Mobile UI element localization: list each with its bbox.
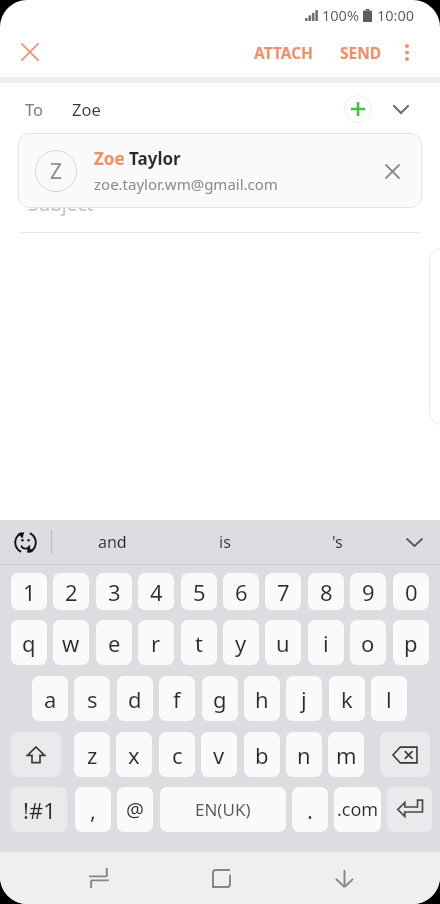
button[interactable]: is bbox=[168, 520, 281, 564]
button[interactable]: Stickers bbox=[7, 524, 43, 560]
staticText: x bbox=[128, 740, 140, 770]
staticText: a bbox=[44, 684, 57, 714]
button[interactable]: 6 bbox=[223, 573, 259, 610]
button[interactable]: @ bbox=[117, 787, 153, 832]
button[interactable]: Z bbox=[18, 133, 422, 208]
button[interactable]: g bbox=[202, 676, 238, 721]
button[interactable]: 4 bbox=[138, 573, 174, 610]
button[interactable]: f bbox=[159, 676, 195, 721]
staticText: c bbox=[172, 740, 183, 770]
button[interactable]: l bbox=[371, 676, 407, 721]
button[interactable]: w bbox=[53, 620, 89, 665]
staticText: 9 bbox=[362, 577, 375, 607]
button[interactable]: b bbox=[244, 732, 280, 777]
button[interactable]: and bbox=[56, 520, 168, 564]
button[interactable]: .com bbox=[334, 787, 381, 832]
staticText: g bbox=[213, 684, 227, 714]
button[interactable]: x bbox=[116, 732, 152, 777]
staticText: v bbox=[213, 740, 225, 770]
button[interactable]: e bbox=[96, 620, 132, 665]
button[interactable]: 7 bbox=[265, 573, 301, 610]
staticText: 4 bbox=[150, 577, 163, 607]
button[interactable]: v bbox=[201, 732, 237, 777]
button[interactable]: d bbox=[117, 676, 153, 721]
staticText: 1 bbox=[23, 577, 36, 607]
staticText: .com bbox=[337, 797, 379, 822]
button[interactable]: Remove recipient bbox=[378, 157, 406, 185]
staticText: , bbox=[90, 795, 96, 825]
button[interactable]: 5 bbox=[181, 573, 217, 610]
button[interactable]: More options bbox=[388, 30, 426, 74]
staticText: m bbox=[336, 740, 357, 770]
button[interactable]: 0 bbox=[393, 573, 429, 610]
staticText: b bbox=[255, 740, 269, 770]
staticText: SEND bbox=[340, 42, 382, 63]
staticText: d bbox=[128, 684, 142, 714]
staticText: . bbox=[307, 795, 313, 825]
button[interactable]: i bbox=[308, 620, 344, 665]
staticText: n bbox=[297, 740, 311, 770]
staticText: ATTACH bbox=[254, 42, 313, 63]
button[interactable]: m bbox=[328, 732, 364, 777]
button[interactable]: c bbox=[159, 732, 195, 777]
staticText: 8 bbox=[320, 577, 333, 607]
button[interactable]: r bbox=[138, 620, 174, 665]
staticText: z bbox=[87, 740, 98, 770]
button[interactable]: s bbox=[74, 676, 110, 721]
staticText: e bbox=[108, 628, 121, 658]
button[interactable]: 2 bbox=[53, 573, 89, 610]
button[interactable]: 's bbox=[281, 520, 394, 564]
staticText: EN(UK) bbox=[195, 798, 251, 821]
button[interactable]: o bbox=[350, 620, 386, 665]
button[interactable]: j bbox=[286, 676, 322, 721]
staticText: 7 bbox=[277, 577, 290, 607]
button[interactable]: Recents bbox=[74, 852, 122, 904]
staticText: s bbox=[87, 684, 98, 714]
button[interactable]: a bbox=[32, 676, 68, 721]
button[interactable]: 1 bbox=[11, 573, 47, 610]
button[interactable]: u bbox=[265, 620, 301, 665]
staticText: 5 bbox=[193, 577, 206, 607]
button[interactable]: Shift bbox=[11, 732, 61, 777]
staticText: Zoe Taylor bbox=[94, 147, 181, 170]
button[interactable]: p bbox=[393, 620, 429, 665]
button[interactable]: SEND bbox=[328, 30, 394, 74]
button[interactable]: q bbox=[11, 620, 47, 665]
button[interactable]: z bbox=[74, 732, 110, 777]
button[interactable]: !#1 bbox=[11, 787, 67, 832]
staticText: @ bbox=[126, 796, 144, 823]
staticText: 's bbox=[332, 531, 343, 553]
button[interactable]: Enter bbox=[387, 787, 432, 832]
button[interactable]: Add recipient bbox=[344, 95, 372, 123]
staticText: o bbox=[361, 628, 375, 658]
button[interactable]: k bbox=[329, 676, 365, 721]
button[interactable]: ATTACH bbox=[242, 30, 325, 74]
staticText: y bbox=[235, 628, 247, 658]
button[interactable]: Show more fields bbox=[385, 93, 417, 125]
button[interactable]: EN(UK) bbox=[160, 787, 286, 832]
staticText: 10:00 bbox=[377, 5, 415, 25]
staticText: To bbox=[25, 98, 44, 120]
button[interactable]: Backspace bbox=[380, 732, 430, 777]
staticText: Subject bbox=[28, 191, 94, 217]
button[interactable]: 3 bbox=[96, 573, 132, 610]
button[interactable]: y bbox=[223, 620, 259, 665]
button[interactable]: Home bbox=[197, 852, 245, 904]
staticText: is bbox=[219, 531, 231, 553]
staticText: !#1 bbox=[23, 795, 56, 825]
staticText: p bbox=[404, 628, 418, 658]
button[interactable]: t bbox=[181, 620, 217, 665]
button[interactable]: h bbox=[244, 676, 280, 721]
button[interactable]: n bbox=[286, 732, 322, 777]
staticText: j bbox=[301, 684, 307, 714]
button[interactable]: 8 bbox=[308, 573, 344, 610]
button[interactable]: . bbox=[292, 787, 328, 832]
button[interactable]: Close bbox=[12, 34, 48, 70]
button[interactable]: 9 bbox=[350, 573, 386, 610]
staticText: t bbox=[195, 628, 203, 658]
button[interactable]: , bbox=[75, 787, 111, 832]
staticText: w bbox=[62, 628, 80, 658]
staticText: u bbox=[276, 628, 290, 658]
button[interactable]: Hide keyboard bbox=[320, 852, 368, 904]
button[interactable]: More suggestions bbox=[396, 524, 432, 560]
